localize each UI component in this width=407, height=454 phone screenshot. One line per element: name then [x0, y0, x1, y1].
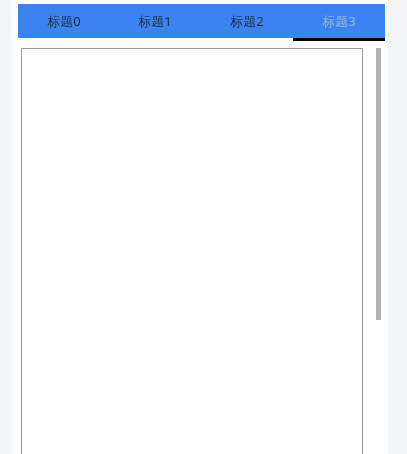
staticText: 标题2 — [230, 12, 264, 30]
button[interactable]: 标题2 — [201, 4, 293, 38]
staticText: 标题1 — [138, 12, 172, 30]
button[interactable]: 标题1 — [109, 4, 201, 38]
staticText: 标题3 — [322, 12, 356, 30]
staticText: 标题0 — [47, 12, 81, 30]
button[interactable]: 标题0 — [18, 4, 109, 38]
button[interactable]: 标题3 — [293, 4, 385, 38]
